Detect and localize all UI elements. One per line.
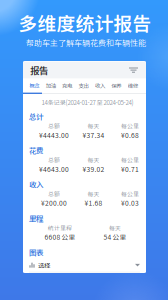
staticText: ¥200.00: [41, 198, 67, 208]
staticText: 14条记录(2024-01-27 至 2024-05-24): [41, 98, 133, 107]
staticText: 图表: [29, 247, 43, 257]
staticText: 每天: [87, 156, 99, 164]
staticText: 每公里: [121, 122, 139, 130]
staticText: 维修: [128, 82, 138, 89]
staticText: 报告: [30, 63, 48, 77]
staticText: 总计: [29, 111, 43, 122]
staticText: 统计里程: [48, 224, 72, 232]
button[interactable]: 概览: [26, 79, 42, 92]
staticText: 54 公里: [103, 232, 126, 242]
staticText: ¥0.03: [121, 198, 139, 208]
staticText: 保养: [111, 82, 121, 89]
staticText: 每公里: [121, 190, 139, 198]
staticText: ¥4643.00: [39, 164, 69, 174]
staticText: 每天: [109, 224, 121, 232]
staticText: ¥0.68: [121, 130, 139, 140]
staticText: 每公里: [121, 156, 139, 164]
staticText: 帮助车主了解车辆花费和车辆性能: [26, 37, 146, 48]
staticText: 总额: [48, 190, 60, 198]
button[interactable]: 支出: [75, 79, 92, 92]
button[interactable]: 充电: [59, 79, 75, 92]
staticText: 概览: [29, 82, 39, 89]
staticText: ¥0.71: [121, 164, 139, 174]
staticText: 每天: [87, 190, 99, 198]
staticText: 收入: [29, 179, 43, 190]
staticText: 支出: [78, 82, 88, 89]
button[interactable]: 筛选: [129, 67, 138, 74]
staticText: 每天: [87, 122, 99, 130]
staticText: 充电: [62, 82, 72, 89]
staticText: 多维度统计报告: [18, 9, 151, 36]
staticText: 加油: [46, 82, 56, 89]
staticText: ¥4443.00: [39, 130, 69, 140]
staticText: 花费: [29, 145, 43, 156]
staticText: 选择: [38, 260, 50, 270]
staticText: 总额: [48, 122, 60, 130]
staticText: 总额: [48, 156, 60, 164]
staticText: ¥1.68: [84, 198, 102, 208]
staticText: ¥37.34: [82, 130, 104, 140]
button[interactable]: 加油: [42, 79, 59, 92]
staticText: 收入: [95, 82, 105, 89]
button[interactable]: 选择: [29, 260, 140, 272]
button[interactable]: 维修: [124, 79, 141, 92]
staticText: 6608 公里: [44, 232, 75, 242]
button[interactable]: 保养: [108, 79, 124, 92]
button[interactable]: 收入: [92, 79, 108, 92]
staticText: ¥39.02: [82, 164, 104, 174]
staticText: 里程: [29, 213, 43, 224]
